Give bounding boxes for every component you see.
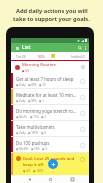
staticText: Tot 26 [16,54,26,59]
staticText: ● 1 [39,99,44,103]
staticText: ● Mo We [16,147,29,151]
button[interactable]: Home [46,175,54,183]
button[interactable]: Morning Routine [11,61,89,73]
staticText: Take multivitamins [16,124,55,130]
button[interactable]: Mark complete [79,142,86,149]
staticText: take to support your goals. [13,15,90,23]
button[interactable]: Mark complete [79,78,86,85]
button[interactable]: Search [76,44,83,51]
button[interactable]: Do 100 pushups [11,137,89,153]
staticText: 12 [52,54,55,58]
staticText: ● 55% [31,147,40,151]
staticText: Add daily actions you will [16,7,88,15]
staticText: Get at least 7 hours of sleep [16,76,74,82]
button[interactable]: Menu [14,45,20,51]
button[interactable]: Mark complete [79,94,86,101]
staticText: Morning Routine [22,62,56,68]
staticText: ● 100% [28,131,39,135]
staticText: ● 80% [28,83,37,87]
staticText: ● 5/5 [22,69,30,73]
staticText: ● 71% [30,115,39,119]
staticText: ● Daily [16,131,26,135]
staticText: ● 4/5 [23,169,31,173]
button[interactable]: Group options [80,64,86,70]
button[interactable]: Mark complete [79,126,86,133]
button[interactable]: Take multivitamins [11,121,89,137]
staticText: Do morning yoga stretch routine [16,108,77,114]
staticText: ● 100% [33,169,44,173]
staticText: keep it off. [23,162,45,168]
staticText: ● Daily [16,99,26,103]
staticText: Meditate for at least 10 minutes [16,92,77,98]
button[interactable]: Recents [68,175,76,183]
staticText: Do 100 pushups [16,140,50,146]
staticText: 90% [38,54,45,59]
button[interactable]: Add [48,159,58,169]
staticText: ● 10 [39,83,46,87]
staticText: Goal: Lose 25 pounds and [23,156,75,162]
button[interactable]: More options [83,45,88,50]
button[interactable]: Get at least 7 hours of sleep [11,73,89,89]
staticText: ● 0 [41,131,46,135]
staticText: List [22,44,31,51]
button[interactable]: Mark complete [79,156,86,163]
staticText: ● 2 [41,115,46,119]
staticText: ● 93% [28,99,37,103]
button[interactable]: Goal: Lose 25 pounds and [11,153,89,175]
button[interactable]: Meditate for at least 10 minutes [11,89,89,105]
button[interactable]: Do morning yoga stretch routine [11,105,89,121]
staticText: ● 3 [42,147,47,151]
staticText: ● Daily [16,83,26,87]
button[interactable]: Mark complete [79,110,86,117]
button[interactable]: Back [25,175,33,183]
staticText: habits(2) [71,54,85,59]
staticText: ● Mo Tu [16,115,28,119]
